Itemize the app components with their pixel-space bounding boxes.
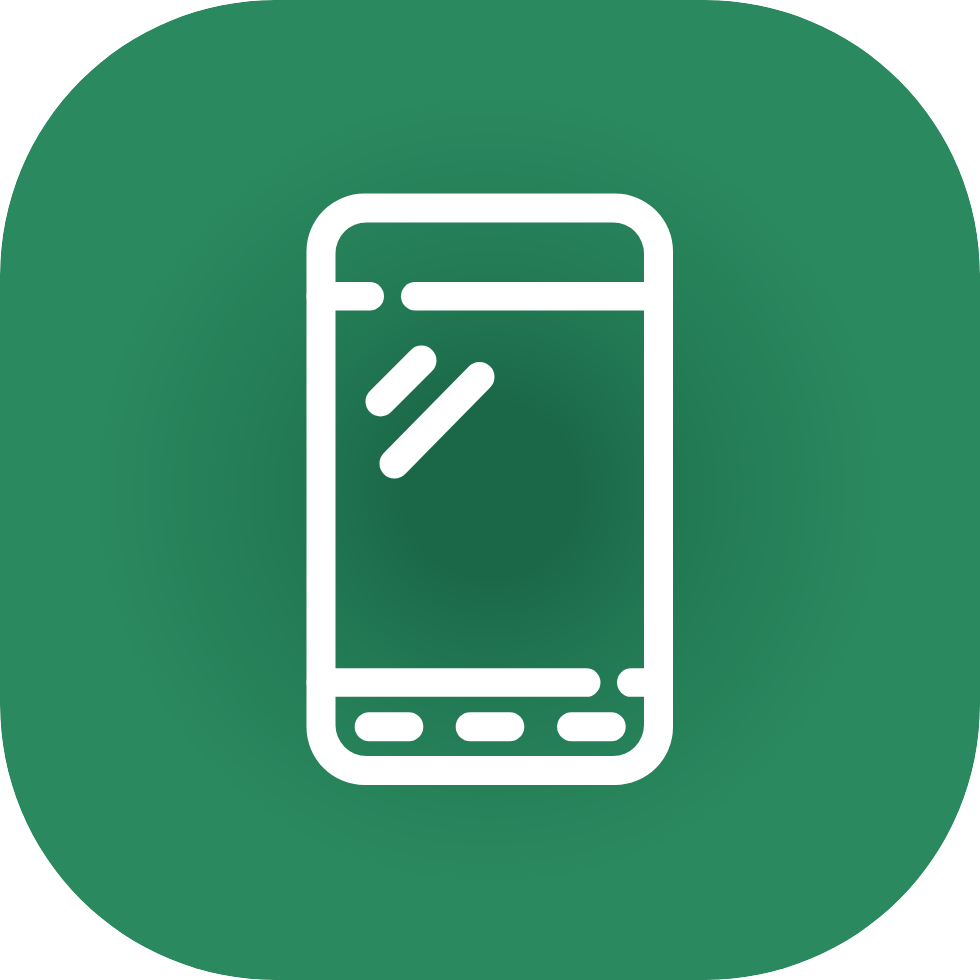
button[interactable]: Smartphone app icon xyxy=(0,0,980,980)
